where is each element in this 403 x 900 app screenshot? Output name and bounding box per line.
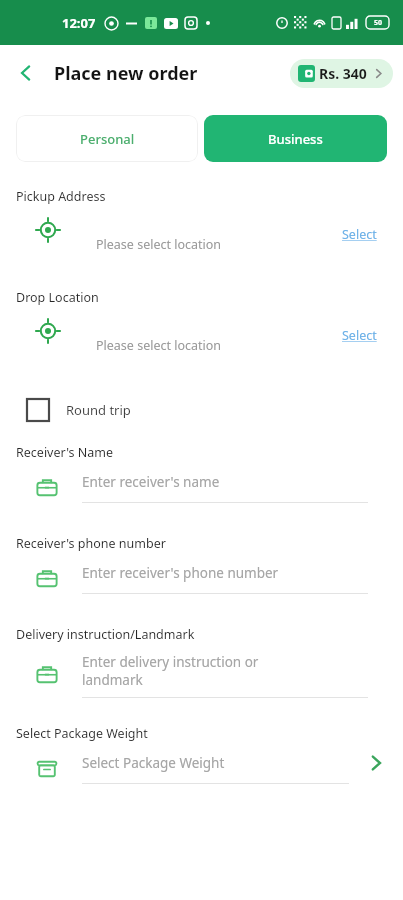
staticText: Round trip xyxy=(66,401,131,419)
staticText: Select xyxy=(342,226,377,243)
staticText: Enter receiver's name xyxy=(82,473,220,491)
staticText: Please select location xyxy=(96,337,222,354)
staticText: Drop Location xyxy=(16,289,99,306)
button[interactable]: Please select location xyxy=(0,205,403,267)
staticText: Select Package Weight xyxy=(82,754,225,772)
staticText: Delivery instruction/Landmark xyxy=(16,626,195,643)
button[interactable]: Rs. 340 xyxy=(290,59,393,88)
button[interactable]: Please select location xyxy=(0,306,403,368)
button[interactable]: Select xyxy=(342,327,377,344)
staticText: Select Package Weight xyxy=(16,725,148,742)
staticText: Receiver's Name xyxy=(16,444,114,461)
button[interactable]: Personal xyxy=(16,115,198,162)
staticText: 12:07 xyxy=(62,14,96,32)
staticText: Rs. 340 xyxy=(319,64,367,83)
staticText: Place new order xyxy=(54,61,198,86)
button[interactable]: Select package weight xyxy=(363,750,389,776)
staticText: Pickup Address xyxy=(16,188,106,205)
staticText: Personal xyxy=(80,130,135,148)
button[interactable]: Round trip xyxy=(26,398,131,422)
button[interactable]: Business xyxy=(204,115,387,162)
button[interactable]: Back xyxy=(8,55,44,91)
button[interactable]: Enter receiver's phone number xyxy=(0,552,403,606)
staticText: 50 xyxy=(374,18,383,28)
staticText: Business xyxy=(268,130,323,148)
staticText: Enter receiver's phone number xyxy=(82,564,279,582)
staticText: Please select location xyxy=(96,236,222,253)
staticText: Receiver's phone number xyxy=(16,535,166,552)
button[interactable]: Enter receiver's name xyxy=(0,461,403,515)
button[interactable]: Enter delivery instruction or landmark xyxy=(0,643,403,707)
button[interactable]: Select xyxy=(342,226,377,243)
staticText: Enter delivery instruction or landmark xyxy=(82,653,259,689)
staticText: Select xyxy=(342,327,377,344)
button[interactable]: Select Package Weight xyxy=(0,742,403,796)
